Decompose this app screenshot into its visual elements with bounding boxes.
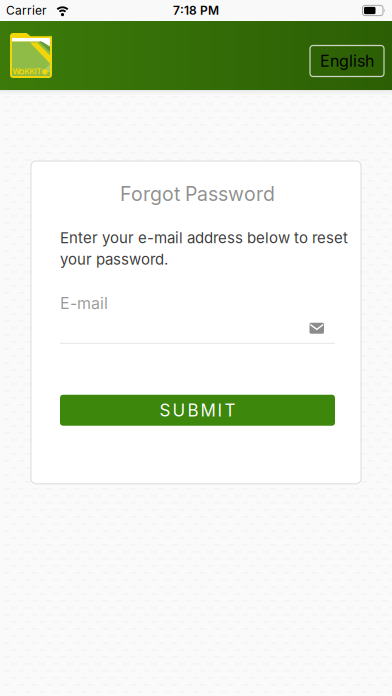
- button[interactable]: English: [310, 45, 384, 76]
- staticText: SUBMIT: [159, 400, 235, 421]
- staticText: English: [320, 51, 374, 71]
- staticText: W: [12, 67, 20, 76]
- staticText: Forgot Password: [120, 182, 275, 206]
- staticText: E-mail: [60, 293, 108, 313]
- button[interactable]: [60, 323, 335, 344]
- staticText: KKIT: [24, 67, 41, 76]
- button[interactable]: SUBMIT: [60, 395, 335, 426]
- staticText: Carrier: [6, 3, 47, 18]
- button[interactable]: W: [0, 33, 52, 78]
- staticText: Enter your e-mail address below to reset…: [60, 229, 348, 268]
- staticText: 7:18 PM: [173, 3, 219, 18]
